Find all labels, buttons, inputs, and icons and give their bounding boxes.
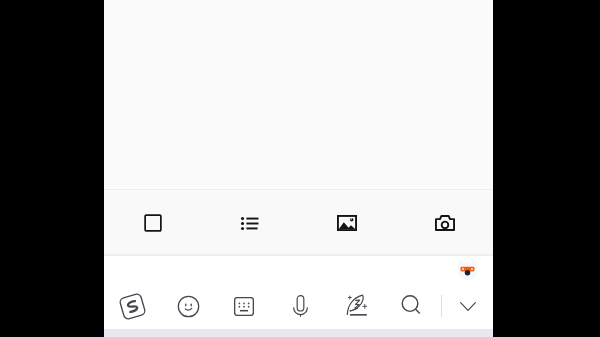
button[interactable]: AI assistant xyxy=(456,258,479,281)
button[interactable]: Camera xyxy=(427,205,463,241)
button[interactable]: Emoji xyxy=(169,287,207,325)
button[interactable]: Hide keyboard xyxy=(449,287,487,325)
button[interactable]: AI writing xyxy=(337,285,375,323)
button[interactable]: Photos xyxy=(329,205,365,241)
button[interactable]: Clipboard xyxy=(135,205,171,241)
button[interactable]: Search xyxy=(392,286,430,324)
button[interactable]: Voice input xyxy=(281,287,319,325)
button[interactable]: Sogou input settings xyxy=(113,287,151,325)
button[interactable]: Text list xyxy=(232,205,268,241)
button[interactable]: Keyboard xyxy=(225,287,263,325)
